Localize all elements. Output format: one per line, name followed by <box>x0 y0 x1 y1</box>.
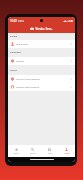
button[interactable]: Contact Tesla support <box>8 83 75 91</box>
staticText: Cart <box>48 152 52 155</box>
staticText: Tesla Inc. <box>35 26 53 31</box>
staticText: Profile <box>64 152 70 155</box>
staticText: About <box>10 69 17 72</box>
staticText: Home <box>13 152 19 155</box>
button[interactable]: English <box>8 57 75 65</box>
button[interactable]: Home <box>8 148 24 155</box>
button[interactable]: Profile <box>58 148 75 155</box>
button[interactable]: Visit our Tesla website <box>8 75 75 83</box>
button[interactable]: Cart <box>41 148 58 155</box>
staticText: English <box>16 60 24 63</box>
staticText: Contact Tesla support <box>16 86 40 89</box>
staticText: 10:02 <box>10 19 17 23</box>
staticText: Edit profile <box>16 43 28 46</box>
button[interactable]: Search <box>24 148 41 155</box>
button[interactable]: Edit profile <box>8 40 75 48</box>
staticText: Language <box>10 51 21 54</box>
staticText: Profile <box>10 35 18 38</box>
staticText: Visit our Tesla website <box>16 78 40 81</box>
staticText: Search <box>30 152 36 155</box>
